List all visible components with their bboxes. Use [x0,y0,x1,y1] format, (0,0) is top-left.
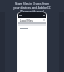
button[interactable]: Local Files [20,19,33,22]
staticText: your devices and AdobeCC [2,6,62,10]
staticText: (Team with ease) [2,10,62,14]
button[interactable] [18,27,46,29]
button[interactable]: Local Files [18,12,46,72]
staticText: Store files in 3 secs from [2,2,62,6]
staticText: Local Files [20,19,33,22]
